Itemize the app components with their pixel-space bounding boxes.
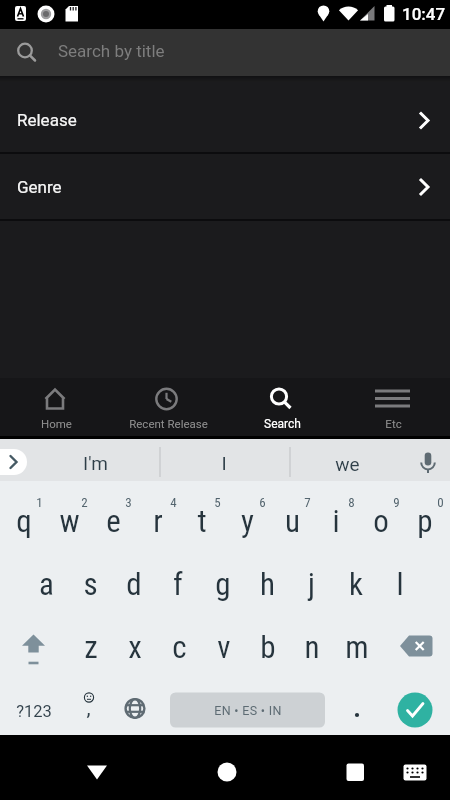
staticText: 3 <box>125 495 132 510</box>
staticText: 0 <box>437 495 444 510</box>
button[interactable] <box>68 613 112 677</box>
staticText: c <box>172 629 187 665</box>
staticText: i <box>332 503 340 539</box>
button[interactable] <box>291 439 406 481</box>
staticText: n <box>304 629 320 665</box>
staticText: x <box>128 629 142 665</box>
button[interactable] <box>289 550 333 614</box>
button[interactable] <box>359 486 404 550</box>
staticText: d <box>126 566 142 602</box>
button[interactable] <box>314 486 359 550</box>
staticText: k <box>349 566 363 602</box>
button[interactable] <box>378 550 422 614</box>
button[interactable] <box>0 154 450 220</box>
button[interactable] <box>46 486 91 550</box>
staticText: we <box>335 453 360 475</box>
button[interactable] <box>225 378 338 437</box>
staticText: u <box>285 503 300 539</box>
button[interactable] <box>201 550 245 614</box>
staticText: l <box>396 566 404 602</box>
staticText: j <box>308 566 315 602</box>
button[interactable] <box>338 378 450 437</box>
button[interactable] <box>23 550 67 614</box>
button[interactable] <box>113 378 226 437</box>
button[interactable] <box>190 742 265 794</box>
button[interactable] <box>383 614 450 678</box>
staticText: y <box>241 503 254 539</box>
button[interactable] <box>0 29 450 76</box>
button[interactable] <box>318 742 393 794</box>
staticText: 10:47 <box>402 4 446 24</box>
staticText: 8 <box>348 495 355 510</box>
button[interactable] <box>225 486 270 550</box>
staticText: I'm <box>83 452 108 474</box>
staticText: Search by title <box>58 41 165 61</box>
button[interactable] <box>170 693 325 728</box>
staticText: f <box>173 566 183 602</box>
button[interactable] <box>30 439 160 481</box>
staticText: r <box>153 503 163 539</box>
staticText: I <box>221 452 227 474</box>
button[interactable] <box>180 486 225 550</box>
staticText: 7 <box>304 495 311 510</box>
button[interactable] <box>68 550 112 614</box>
staticText: ?123 <box>16 702 52 721</box>
button[interactable] <box>0 678 67 740</box>
button[interactable] <box>395 690 435 730</box>
button[interactable] <box>333 550 377 614</box>
staticText: 4 <box>170 495 177 510</box>
button[interactable] <box>113 613 157 677</box>
staticText: b <box>260 629 276 665</box>
staticText: m <box>345 629 369 665</box>
staticText: v <box>217 629 231 665</box>
staticText: p <box>417 503 433 539</box>
button[interactable] <box>269 486 314 550</box>
staticText: Genre <box>17 177 62 197</box>
staticText: 9 <box>393 495 400 510</box>
staticText: EN • ES • IN <box>214 703 282 718</box>
button[interactable] <box>0 614 67 678</box>
staticText: o <box>373 503 389 539</box>
button[interactable] <box>60 742 135 794</box>
button[interactable] <box>156 550 200 614</box>
button[interactable] <box>91 486 136 550</box>
staticText: a <box>39 566 54 602</box>
staticText: Recent Release <box>129 417 208 430</box>
button[interactable] <box>2 486 47 550</box>
staticText: 6 <box>259 495 266 510</box>
staticText: Search <box>264 417 301 431</box>
staticText: 2 <box>81 495 88 510</box>
button[interactable] <box>161 439 290 481</box>
staticText: q <box>16 503 32 539</box>
staticText: , <box>86 696 91 721</box>
button[interactable] <box>112 678 157 740</box>
button[interactable] <box>335 678 380 740</box>
staticText: Etc <box>385 417 402 430</box>
button[interactable] <box>201 613 245 677</box>
staticText: s <box>83 566 98 602</box>
staticText: t <box>197 503 207 539</box>
button[interactable] <box>245 550 289 614</box>
staticText: z <box>84 629 98 665</box>
button[interactable] <box>403 486 448 550</box>
staticText: Release <box>17 110 77 130</box>
staticText: g <box>215 566 231 602</box>
staticText: h <box>260 566 275 602</box>
button[interactable] <box>246 613 290 677</box>
button[interactable] <box>0 378 113 437</box>
button[interactable] <box>398 752 434 792</box>
button[interactable] <box>0 76 450 153</box>
staticText: Home <box>41 417 72 430</box>
button[interactable] <box>112 550 156 614</box>
button[interactable] <box>135 486 180 550</box>
button[interactable] <box>67 678 112 740</box>
staticText: e <box>106 503 121 539</box>
staticText: w <box>59 503 80 539</box>
button[interactable] <box>334 613 378 677</box>
staticText: 1 <box>36 495 43 510</box>
staticText: 5 <box>214 495 221 510</box>
button[interactable] <box>290 613 334 677</box>
button[interactable] <box>157 613 201 677</box>
